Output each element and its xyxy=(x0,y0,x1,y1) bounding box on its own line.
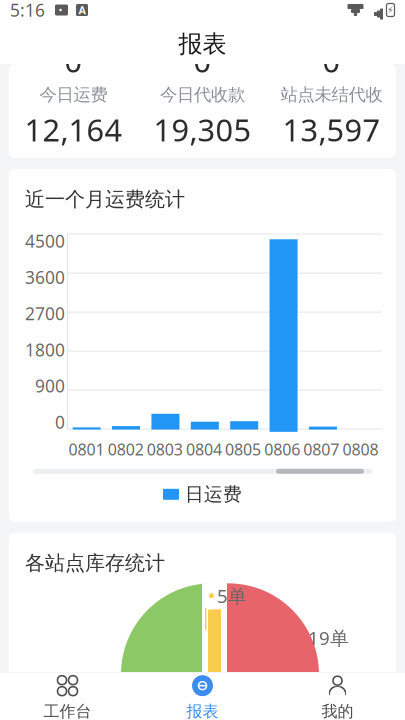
staticText: 今日代收款 xyxy=(160,84,245,105)
staticText: 13,597 xyxy=(282,109,380,150)
staticText: 19,305 xyxy=(153,109,251,150)
staticText: 报表 xyxy=(178,29,226,59)
staticText: 0801 xyxy=(69,439,105,460)
staticText: ⚡︎ xyxy=(387,5,394,15)
staticText: 站点未结代收 xyxy=(280,84,382,105)
staticText: 12,164 xyxy=(24,109,122,150)
button[interactable]: 工作台 xyxy=(0,672,135,720)
staticText: 1800 xyxy=(25,338,65,361)
staticText: 0 xyxy=(55,410,65,433)
staticText: 0807 xyxy=(303,439,339,460)
staticText: A xyxy=(78,3,85,17)
staticText: 近一个月运费统计 xyxy=(25,187,185,212)
staticText: 我的 xyxy=(321,702,353,720)
staticText: 今日运费 xyxy=(39,84,107,105)
staticText: 0808 xyxy=(342,439,378,460)
staticText: 日运费 xyxy=(185,483,242,506)
staticText: 0803 xyxy=(147,439,183,460)
staticText: 3600 xyxy=(25,266,65,289)
staticText: 19单 xyxy=(308,625,349,650)
staticText: 0806 xyxy=(264,439,300,460)
staticText: 0 xyxy=(193,40,211,81)
staticText: 2700 xyxy=(25,302,65,325)
staticText: 0 xyxy=(322,40,340,81)
staticText: 0805 xyxy=(225,439,261,460)
staticText: 4500 xyxy=(25,230,65,253)
staticText: 报表 xyxy=(186,702,218,720)
staticText: 各站点库存统计 xyxy=(25,551,165,575)
staticText: 5单 xyxy=(217,583,247,608)
staticText: 工作台 xyxy=(43,702,91,720)
button[interactable]: 报表 xyxy=(135,672,270,720)
staticText: 5:16 xyxy=(10,0,45,21)
staticText: 0802 xyxy=(108,439,144,460)
staticText: 0 xyxy=(64,40,82,81)
staticText: 900 xyxy=(35,374,65,397)
staticText: 0804 xyxy=(186,439,222,460)
button[interactable]: 我的 xyxy=(270,672,405,720)
